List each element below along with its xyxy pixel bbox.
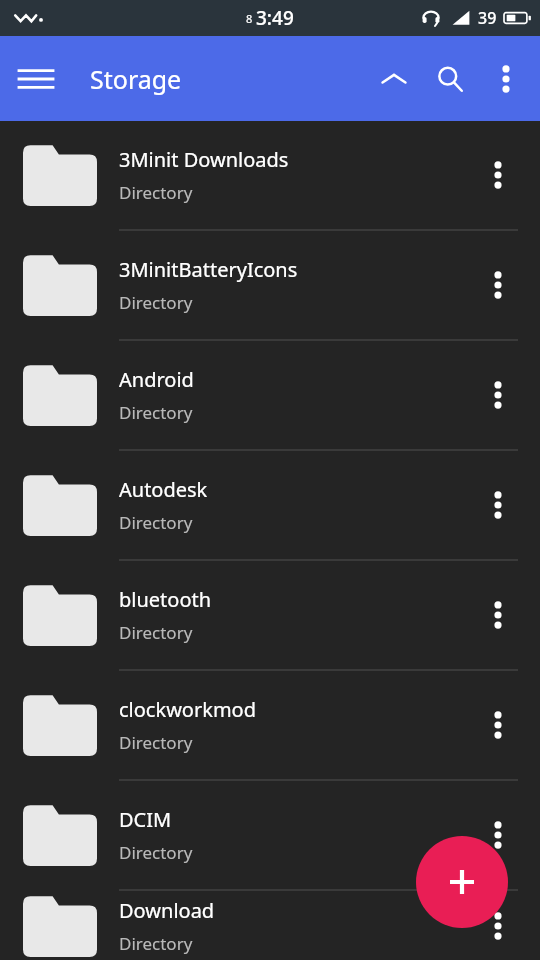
button[interactable]: Autodesk — [0, 451, 540, 559]
button[interactable]: DCIM — [0, 781, 540, 889]
staticText: 3Minit Downloads — [119, 146, 289, 173]
staticText: clockworkmod — [119, 696, 256, 723]
staticText: DCIM — [119, 806, 172, 833]
staticText: Android — [119, 366, 194, 393]
button[interactable]: Android — [0, 341, 540, 449]
staticText: 3:49 — [256, 5, 294, 31]
staticText: Directory — [119, 181, 193, 204]
staticText: Directory — [119, 731, 193, 754]
staticText: Download — [119, 897, 215, 924]
button[interactable]: Search — [422, 44, 478, 114]
staticText: 3MinitBatteryIcons — [119, 256, 298, 283]
staticText: Directory — [119, 621, 193, 644]
button[interactable]: More options for Autodesk — [466, 451, 530, 559]
button[interactable]: 3Minit Downloads — [0, 121, 540, 229]
button[interactable]: More options for 3MinitBatteryIcons — [466, 231, 530, 339]
button[interactable]: More options for Download — [466, 891, 530, 960]
staticText: Storage — [90, 62, 182, 96]
staticText: Directory — [119, 291, 193, 314]
button[interactable]: More options for Android — [466, 341, 530, 449]
button[interactable]: Open navigation drawer — [8, 51, 64, 107]
button[interactable]: More options — [478, 44, 534, 114]
staticText: Autodesk — [119, 476, 208, 503]
button[interactable]: More options for 3Minit Downloads — [466, 121, 530, 229]
button[interactable]: 3MinitBatteryIcons — [0, 231, 540, 339]
button[interactable]: More options for DCIM — [466, 781, 530, 889]
staticText: 8 — [246, 11, 253, 26]
button[interactable]: clockworkmod — [0, 671, 540, 779]
button[interactable]: Download — [0, 891, 540, 960]
staticText: Directory — [119, 511, 193, 534]
staticText: 39 — [478, 7, 497, 29]
staticText: bluetooth — [119, 586, 212, 613]
staticText: Directory — [119, 401, 193, 424]
button[interactable]: Add — [416, 836, 508, 928]
button[interactable]: bluetooth — [0, 561, 540, 669]
staticText: Directory — [119, 932, 193, 955]
button[interactable]: Collapse — [366, 44, 422, 114]
staticText: Directory — [119, 841, 193, 864]
button[interactable]: More options for bluetooth — [466, 561, 530, 669]
button[interactable]: More options for clockworkmod — [466, 671, 530, 779]
